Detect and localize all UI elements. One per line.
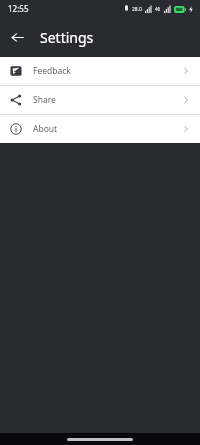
button[interactable]: Back [4,24,30,50]
staticText: 12:55 [8,3,29,14]
staticText: Share [33,94,56,106]
button[interactable]: Share [0,86,200,114]
staticText: Feedback [33,65,71,77]
staticText: About [33,123,58,135]
staticText: 46 [155,6,161,12]
staticText: Settings [40,28,94,47]
staticText: 28.0 [132,6,142,13]
button[interactable]: Feedback [0,57,200,85]
button[interactable]: About [0,115,200,143]
